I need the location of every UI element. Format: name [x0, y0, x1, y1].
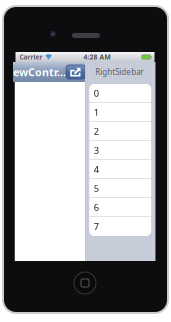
button[interactable]: 2	[89, 122, 151, 141]
button[interactable]: 7	[89, 217, 151, 236]
staticText: 7	[94, 220, 99, 233]
staticText: 4:28 AM	[83, 53, 110, 61]
button[interactable]: 4	[89, 160, 151, 179]
button[interactable]: 0	[89, 84, 151, 103]
staticText: 6	[94, 201, 99, 213]
button[interactable]: 6	[89, 198, 151, 217]
button[interactable]: Share	[66, 65, 85, 79]
button[interactable]: 1	[89, 103, 151, 122]
staticText: 4	[94, 163, 99, 175]
staticText: 0	[94, 87, 99, 99]
staticText: RightSidebar	[95, 67, 143, 77]
staticText: 2	[94, 125, 99, 137]
staticText: Carrier	[19, 53, 42, 61]
button[interactable]: 3	[89, 141, 151, 160]
staticText: ewContr…	[13, 65, 66, 79]
staticText: 1	[94, 106, 99, 118]
staticText: 5	[94, 182, 99, 194]
staticText: 3	[94, 144, 99, 156]
button[interactable]: 5	[89, 179, 151, 198]
